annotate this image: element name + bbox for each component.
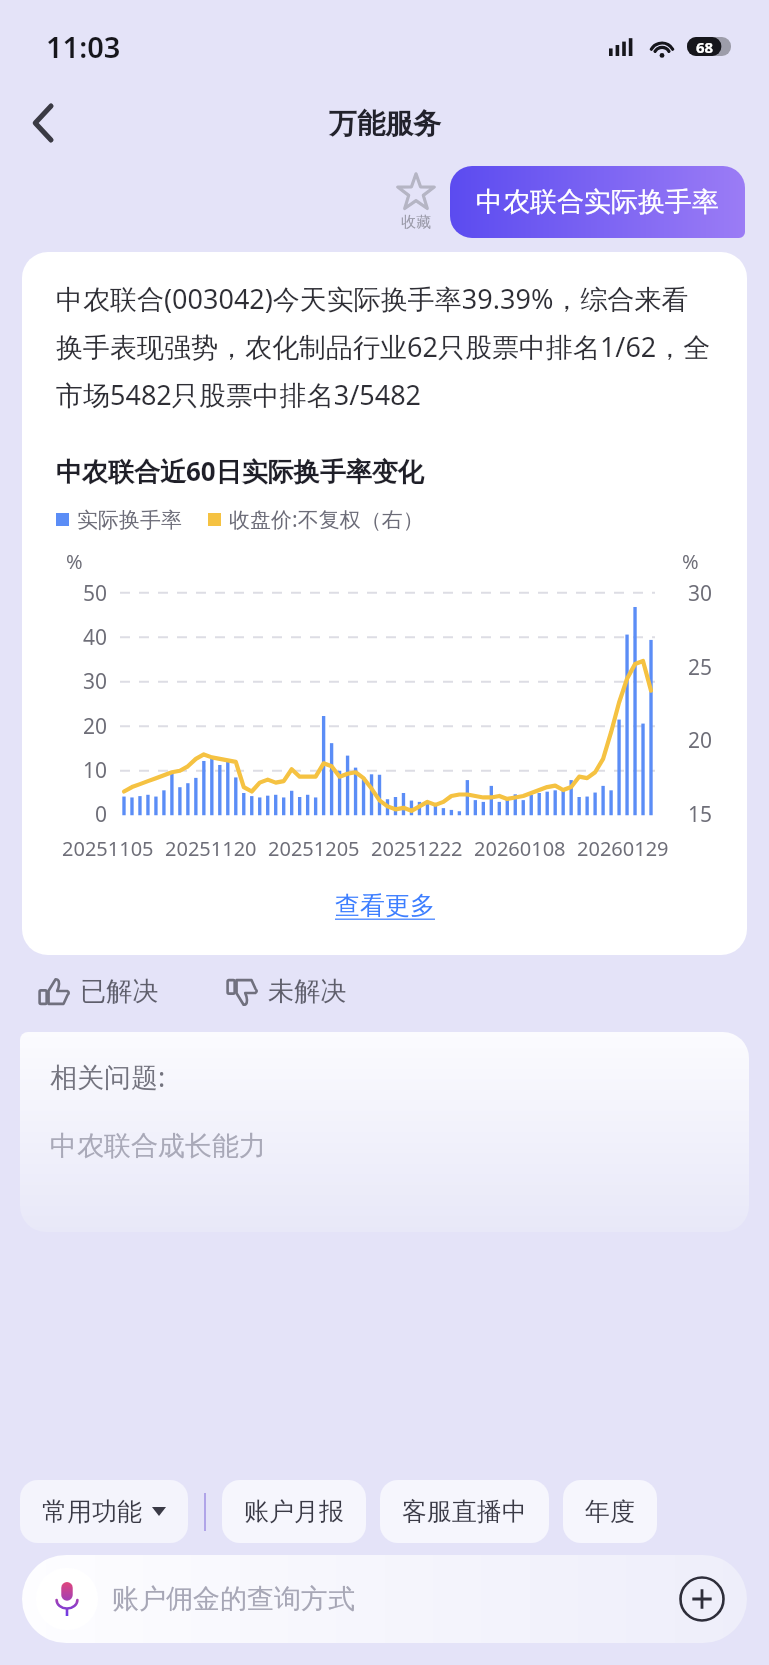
- staticText: 20260108: [474, 835, 566, 862]
- staticText: 20251120: [165, 835, 257, 862]
- button[interactable]: Back: [18, 97, 70, 149]
- staticText: 25: [688, 653, 713, 682]
- staticText: 收盘价:不复权（右）: [229, 505, 424, 534]
- staticText: 账户佣金的查询方式: [112, 1582, 679, 1616]
- staticText: 客服直播中: [402, 1496, 527, 1527]
- button[interactable]: 收藏: [396, 173, 436, 232]
- staticText: 20: [688, 726, 713, 755]
- staticText: 20251205: [268, 835, 360, 862]
- button[interactable]: 账户月报: [222, 1480, 366, 1543]
- button[interactable]: 查看更多: [319, 884, 451, 927]
- staticText: 常用功能: [42, 1496, 142, 1527]
- button[interactable]: 未解决: [222, 965, 350, 1018]
- button[interactable]: 中农联合实际换手率: [450, 166, 745, 238]
- staticText: 收藏: [401, 213, 431, 232]
- button[interactable]: 客服直播中: [380, 1480, 549, 1543]
- staticText: 20251222: [371, 835, 463, 862]
- staticText: 未解决: [268, 975, 346, 1008]
- button[interactable]: 年度: [563, 1480, 657, 1543]
- staticText: 0: [95, 800, 108, 829]
- staticText: 查看更多: [335, 890, 435, 921]
- staticText: 账户月报: [244, 1496, 344, 1527]
- staticText: 30: [83, 667, 108, 696]
- staticText: 50: [83, 579, 108, 608]
- staticText: 40: [83, 623, 108, 652]
- staticText: 30: [688, 579, 713, 608]
- staticText: 实际换手率: [77, 507, 182, 533]
- staticText: 20260129: [577, 835, 669, 862]
- button[interactable]: 常用功能: [20, 1480, 188, 1543]
- staticText: 中农联合(003042)今天实际换手率39.39%，综合来看换手表现强势，农化制…: [56, 280, 713, 413]
- button[interactable]: 中农联合成长能力: [50, 1129, 266, 1163]
- staticText: 68: [696, 37, 714, 57]
- staticText: %: [682, 548, 699, 575]
- button[interactable]: More: [679, 1576, 725, 1622]
- staticText: %: [66, 548, 83, 575]
- staticText: 15: [688, 800, 713, 829]
- staticText: 万能服务: [329, 106, 441, 141]
- staticText: 相关问题:: [50, 1058, 166, 1095]
- staticText: 20251105: [62, 835, 154, 862]
- button[interactable]: 已解决: [34, 965, 162, 1018]
- staticText: 已解决: [80, 975, 158, 1008]
- staticText: 11:03: [46, 27, 121, 66]
- button[interactable]: Voice input: [36, 1568, 98, 1630]
- staticText: 20: [83, 712, 108, 741]
- staticText: 中农联合近60日实际换手率变化: [56, 453, 424, 489]
- staticText: 10: [83, 756, 108, 785]
- staticText: 中农联合实际换手率: [476, 185, 719, 219]
- staticText: 年度: [585, 1496, 635, 1527]
